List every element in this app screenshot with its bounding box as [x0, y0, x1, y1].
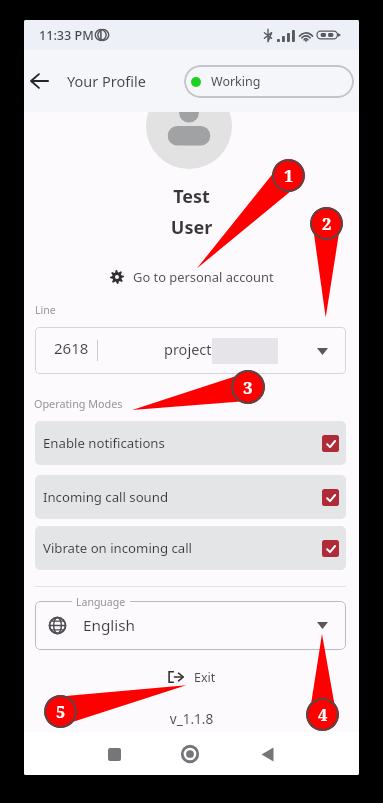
button[interactable]: Go to personal account [24, 262, 359, 292]
staticText: Test [24, 184, 359, 209]
staticText: 5 [56, 701, 66, 723]
staticText: 11:33 PM [39, 27, 94, 44]
staticText: User [24, 215, 359, 240]
staticText: English [83, 615, 136, 636]
button[interactable]: Incoming call sound [35, 475, 346, 519]
staticText: 2618 [54, 338, 89, 358]
staticText: Line [35, 303, 56, 317]
button[interactable]: Navigate back [24, 62, 58, 100]
staticText: Working [211, 73, 261, 90]
staticText: project [164, 339, 212, 359]
button[interactable]: Working [184, 65, 354, 98]
staticText: 4 [318, 703, 328, 726]
staticText: 3 [243, 376, 253, 399]
staticText: Language [76, 595, 126, 609]
button[interactable]: Home [169, 733, 211, 775]
staticText: Your Profile [67, 71, 146, 91]
button[interactable]: 2618 [35, 327, 346, 374]
button[interactable]: English [35, 601, 346, 650]
staticText: Exit [194, 669, 216, 686]
button[interactable]: Enable notifications [35, 421, 346, 465]
staticText: Go to personal account [133, 268, 274, 286]
button[interactable]: Vibrate on incoming call [35, 526, 346, 570]
button[interactable]: Back [246, 733, 288, 775]
button[interactable]: Recent apps [93, 733, 135, 775]
staticText: Incoming call sound [43, 488, 169, 506]
staticText: 1 [284, 165, 294, 187]
staticText: Vibrate on incoming call [43, 539, 193, 557]
staticText: v_1.1.8 [24, 709, 359, 728]
button[interactable]: Exit [24, 664, 359, 690]
staticText: Operating Modes [34, 396, 123, 411]
staticText: 2 [322, 212, 332, 235]
staticText: Enable notifications [43, 434, 165, 452]
